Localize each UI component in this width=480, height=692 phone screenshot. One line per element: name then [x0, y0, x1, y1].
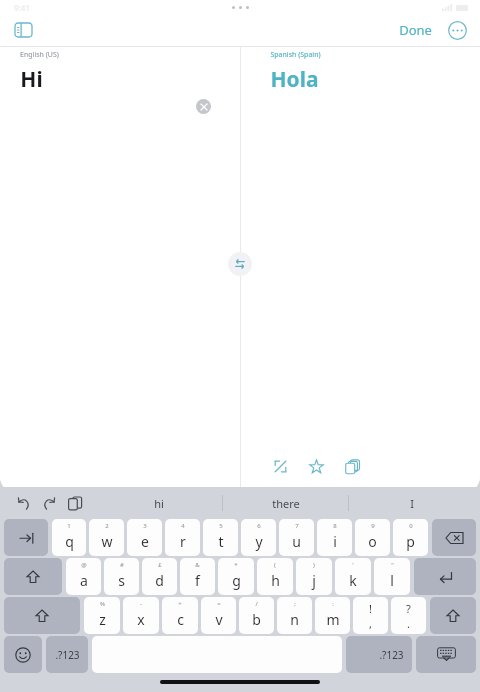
button[interactable]: ): [296, 558, 332, 595]
staticText: ,: [369, 616, 372, 631]
staticText: 8: [333, 522, 337, 530]
staticText: n: [290, 610, 299, 629]
staticText: u: [292, 532, 301, 551]
staticText: @: [81, 561, 87, 569]
button[interactable]: 3: [127, 519, 162, 556]
staticText: d: [155, 571, 164, 590]
staticText: g: [232, 571, 241, 590]
staticText: i: [333, 532, 337, 551]
staticText: v: [215, 610, 223, 629]
staticText: *: [234, 561, 238, 569]
staticText: ;: [294, 600, 296, 608]
button[interactable]: 1: [52, 519, 86, 556]
staticText: s: [118, 571, 125, 590]
staticText: -: [140, 600, 142, 608]
button[interactable]: 7: [279, 519, 314, 556]
button[interactable]: Return: [414, 558, 476, 595]
staticText: %: [100, 600, 105, 608]
staticText: k: [349, 571, 357, 590]
button[interactable]: More options: [444, 17, 470, 43]
staticText: y: [255, 532, 263, 551]
staticText: Done: [399, 21, 432, 39]
staticText: r: [180, 532, 186, 551]
staticText: 2: [105, 522, 109, 530]
staticText: £: [158, 561, 162, 569]
button[interactable]: 6: [241, 519, 276, 556]
button[interactable]: .?123: [346, 636, 412, 673]
staticText: q: [65, 532, 74, 551]
button[interactable]: there: [223, 488, 348, 518]
button[interactable]: Add to favorites: [304, 454, 328, 478]
button[interactable]: &: [180, 558, 215, 595]
button[interactable]: =: [201, 597, 236, 634]
staticText: there: [272, 496, 300, 511]
button[interactable]: Shift: [430, 597, 476, 634]
staticText: 6: [257, 522, 261, 530]
button[interactable]: *: [218, 558, 254, 595]
button[interactable]: Shift: [4, 597, 80, 634]
button[interactable]: -: [123, 597, 159, 634]
staticText: Hola: [270, 65, 319, 94]
button[interactable]: Tab: [4, 519, 48, 556]
staticText: English (US): [20, 50, 59, 60]
staticText: j: [312, 571, 316, 590]
staticText: z: [99, 610, 106, 629]
button[interactable]: %: [84, 597, 120, 634]
button[interactable]: Clear text: [196, 99, 211, 114]
button[interactable]: Done: [393, 17, 438, 43]
button[interactable]: Expand translation: [268, 454, 292, 478]
staticText: b: [252, 610, 261, 629]
staticText: .?123: [379, 648, 404, 662]
button[interactable]: @: [66, 558, 101, 595]
button[interactable]: ;: [277, 597, 312, 634]
button[interactable]: !: [353, 597, 388, 634]
button[interactable]: £: [142, 558, 177, 595]
button[interactable]: Copy translation: [340, 454, 364, 478]
button[interactable]: 4: [165, 519, 200, 556]
staticText: o: [368, 532, 377, 551]
staticText: ": [391, 561, 394, 569]
button[interactable]: (: [257, 558, 293, 595]
button[interactable]: Shift: [4, 558, 62, 595]
button[interactable]: +: [162, 597, 198, 634]
staticText: c: [177, 610, 184, 629]
button[interactable]: Emoji: [4, 636, 42, 673]
button[interactable]: 0: [393, 519, 428, 556]
button[interactable]: Hide keyboard: [416, 636, 476, 673]
staticText: &: [195, 561, 200, 569]
staticText: ): [313, 561, 315, 569]
staticText: m: [326, 610, 340, 629]
staticText: p: [406, 532, 415, 551]
button[interactable]: 2: [89, 519, 124, 556]
button[interactable]: 5: [203, 519, 238, 556]
button[interactable]: hi: [96, 488, 222, 518]
button[interactable]: Undo: [10, 490, 36, 516]
button[interactable]: 8: [317, 519, 352, 556]
button[interactable]: ?: [391, 597, 426, 634]
staticText: /: [255, 600, 258, 608]
staticText: 3: [143, 522, 147, 530]
button[interactable]: Redo: [36, 490, 62, 516]
button[interactable]: Show sidebar: [8, 15, 38, 45]
staticText: (: [274, 561, 276, 569]
staticText: #: [120, 561, 124, 569]
button[interactable]: :: [315, 597, 350, 634]
staticText: I: [410, 496, 414, 511]
button[interactable]: ": [374, 558, 410, 595]
staticText: 7: [295, 522, 299, 530]
button[interactable]: #: [104, 558, 139, 595]
staticText: .: [407, 616, 410, 631]
button[interactable]: Swap languages: [228, 252, 252, 276]
button[interactable]: Backspace: [432, 519, 476, 556]
staticText: +: [178, 600, 182, 608]
button[interactable]: .?123: [46, 636, 88, 673]
button[interactable]: /: [239, 597, 274, 634]
button[interactable]: 9: [355, 519, 390, 556]
button[interactable]: I: [349, 488, 474, 518]
staticText: 9:41: [14, 2, 30, 13]
staticText: :: [332, 600, 334, 608]
button[interactable]: ': [335, 558, 371, 595]
staticText: .?123: [55, 648, 80, 662]
button[interactable]: Paste: [62, 490, 88, 516]
